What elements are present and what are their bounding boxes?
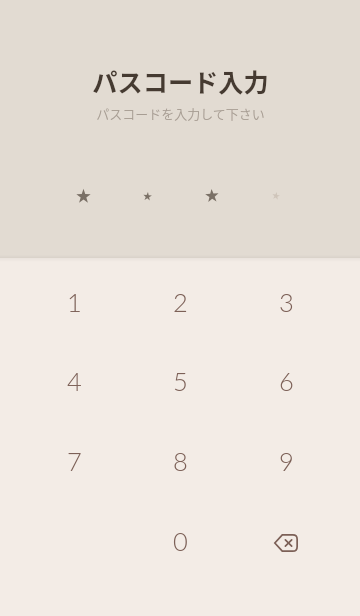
- staticText: 3: [279, 287, 294, 318]
- button[interactable]: 3: [233, 262, 339, 342]
- staticText: 0: [173, 526, 188, 557]
- staticText: 7: [67, 446, 82, 477]
- staticText: パスコード入力: [92, 63, 269, 99]
- staticText: 1: [67, 287, 82, 318]
- staticText: 5: [173, 366, 188, 397]
- staticText: 9: [279, 446, 294, 477]
- staticText: 8: [173, 446, 188, 477]
- staticText: パスコードを入力して下さい: [96, 104, 265, 123]
- staticText: 2: [173, 287, 188, 318]
- button[interactable]: 6: [233, 341, 339, 421]
- button[interactable]: 8: [127, 421, 233, 501]
- button[interactable]: 4: [21, 341, 127, 421]
- staticText: 6: [279, 366, 294, 397]
- staticText: 4: [67, 366, 82, 397]
- button[interactable]: 5: [127, 341, 233, 421]
- button[interactable]: 2: [127, 262, 233, 342]
- button[interactable]: 7: [21, 421, 127, 501]
- button[interactable]: Backspace: [233, 503, 339, 583]
- button[interactable]: 0: [127, 501, 233, 581]
- button[interactable]: 1: [21, 262, 127, 342]
- button[interactable]: 9: [233, 421, 339, 501]
